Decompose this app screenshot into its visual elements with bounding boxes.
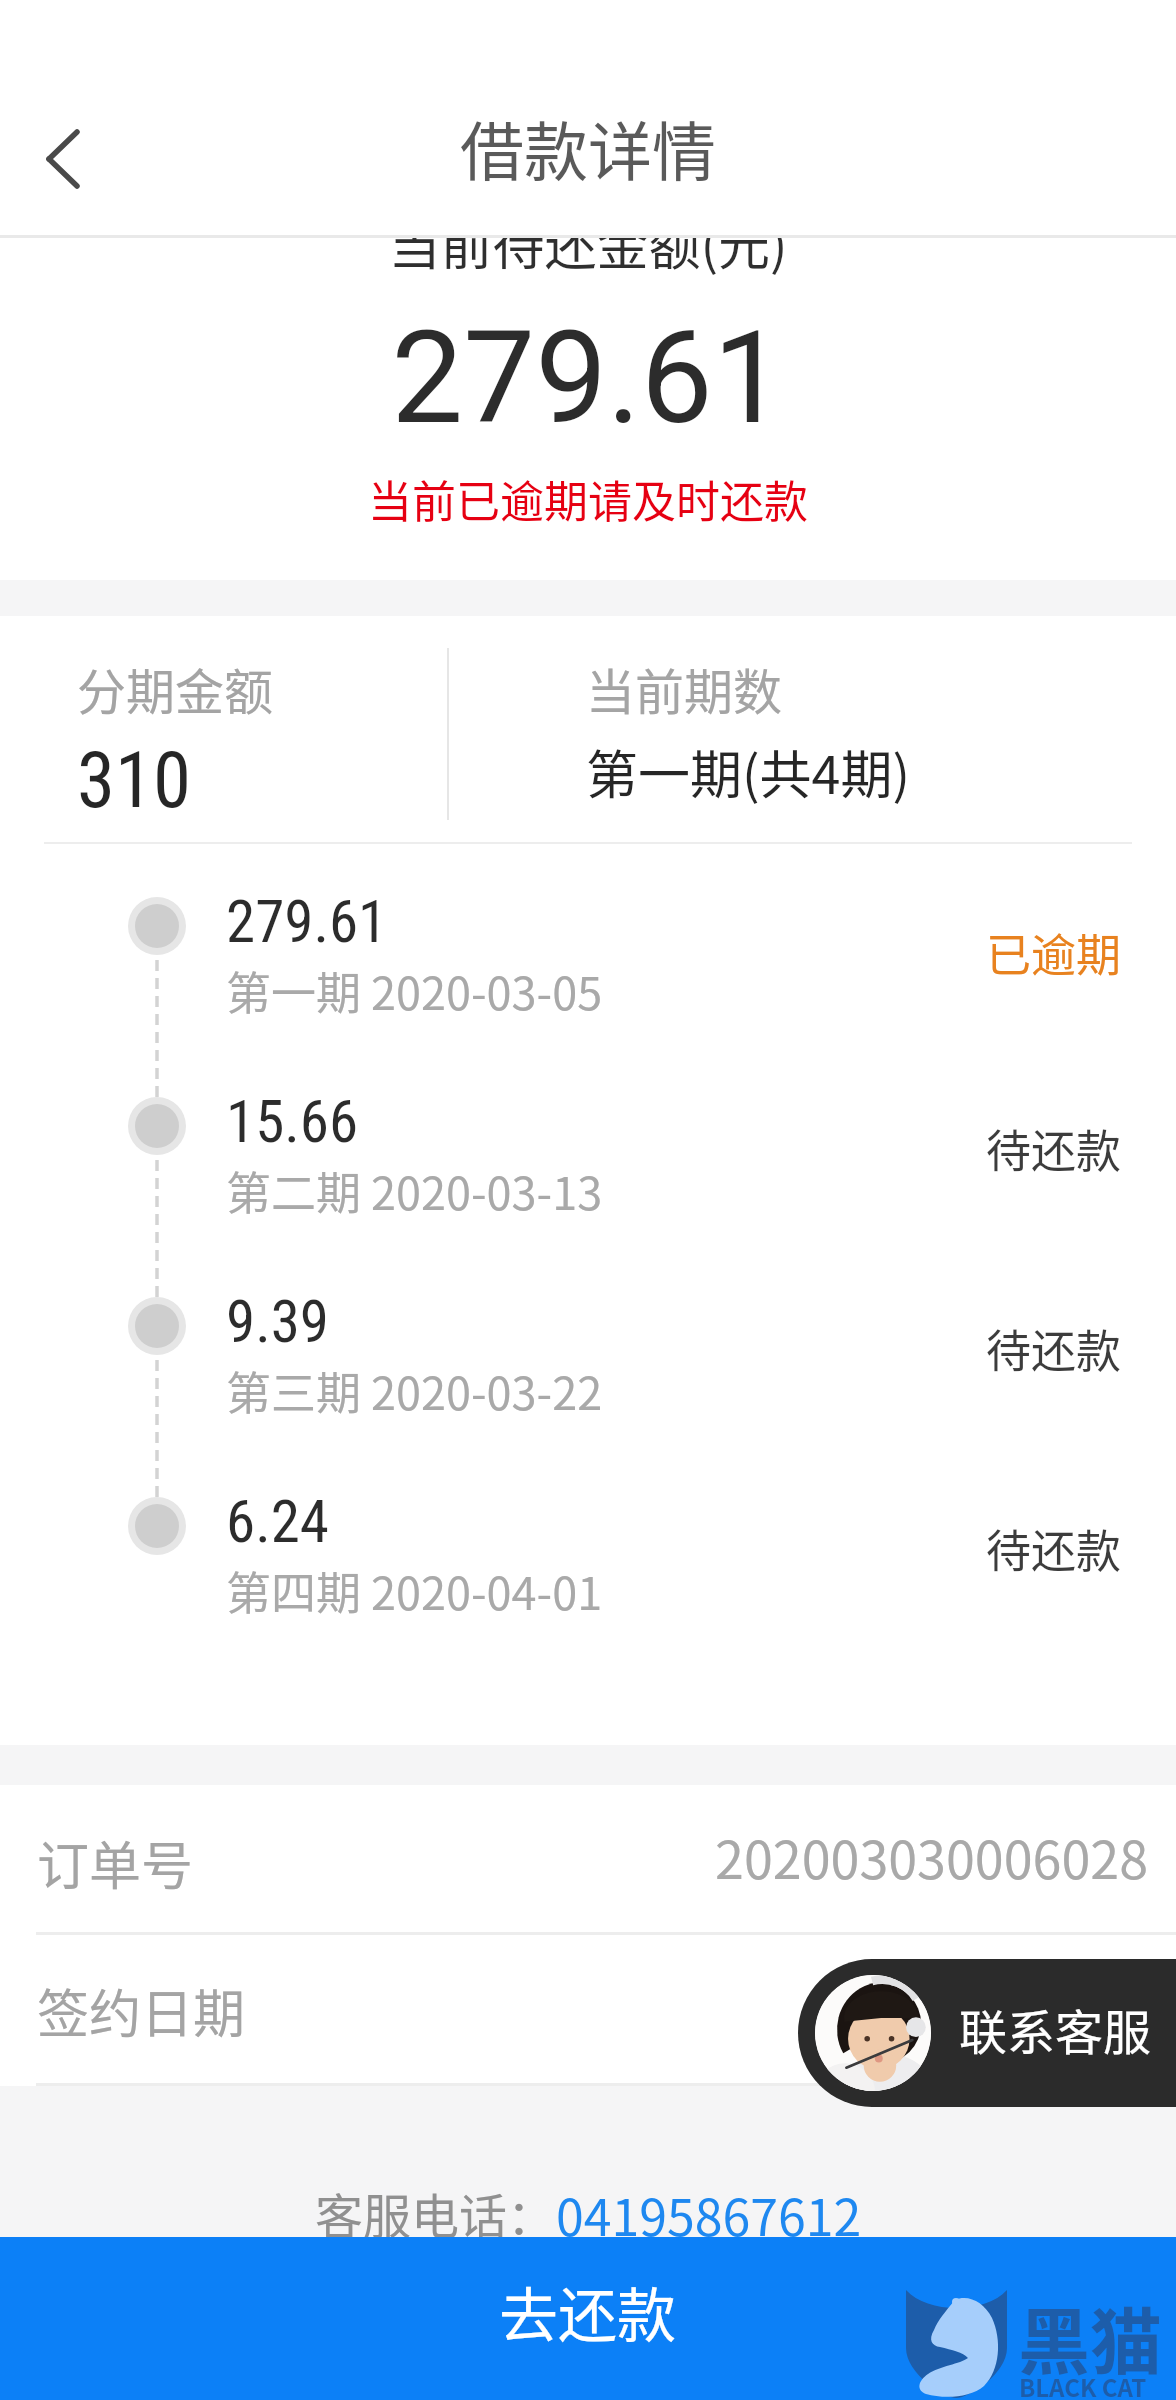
staticText: 15.66: [226, 1087, 359, 1156]
staticText: 当前待还金额(元): [0, 205, 1176, 280]
staticText: 6.24: [226, 1487, 329, 1556]
staticText: 分期金额: [77, 653, 274, 724]
staticText: 310: [77, 736, 192, 826]
button[interactable]: 9.39: [0, 1266, 1176, 1446]
staticText: 279.61: [226, 887, 388, 956]
staticText: 第一期(共4期): [586, 734, 911, 809]
staticText: 9.39: [226, 1287, 329, 1356]
staticText: 待还款: [986, 1316, 1122, 1381]
staticText: 第四期 2020-04-01: [226, 1558, 603, 1623]
staticText: 202003030006028: [0, 1819, 1148, 1894]
staticText: 签约日期: [37, 1973, 246, 2048]
button[interactable]: Back: [8, 104, 118, 214]
button[interactable]: 联系客服: [798, 1959, 1176, 2107]
staticText: 279.61: [0, 303, 1176, 453]
button[interactable]: 订单号: [0, 1785, 1176, 1932]
button[interactable]: 279.61: [0, 866, 1176, 1046]
button[interactable]: 签约日期: [0, 1935, 1176, 2083]
button[interactable]: 6.24: [0, 1466, 1176, 1646]
button[interactable]: 15.66: [0, 1066, 1176, 1246]
staticText: 当前已逾期请及时还款: [0, 467, 1176, 531]
staticText: 第一期 2020-03-05: [226, 958, 603, 1023]
staticText: 待还款: [986, 1516, 1122, 1581]
staticText: 04195867612: [556, 2178, 862, 2250]
staticText: 第三期 2020-03-22: [226, 1358, 603, 1423]
staticText: 借款详情: [0, 101, 1176, 194]
staticText: 当前期数: [586, 653, 783, 724]
staticText: 已逾期: [986, 920, 1122, 985]
staticText: BLACK CAT: [1019, 2369, 1147, 2400]
staticText: 订单号: [37, 1825, 194, 1900]
staticText: 第二期 2020-03-13: [226, 1158, 603, 1223]
staticText: 待还款: [986, 1116, 1122, 1181]
staticText: 客服电话：: [315, 2178, 556, 2248]
button[interactable]: 去还款: [0, 2237, 1176, 2400]
staticText: 联系客服: [959, 1994, 1152, 2064]
staticText: 黑猫: [1018, 2284, 1163, 2388]
staticText: 去还款: [499, 2269, 677, 2354]
